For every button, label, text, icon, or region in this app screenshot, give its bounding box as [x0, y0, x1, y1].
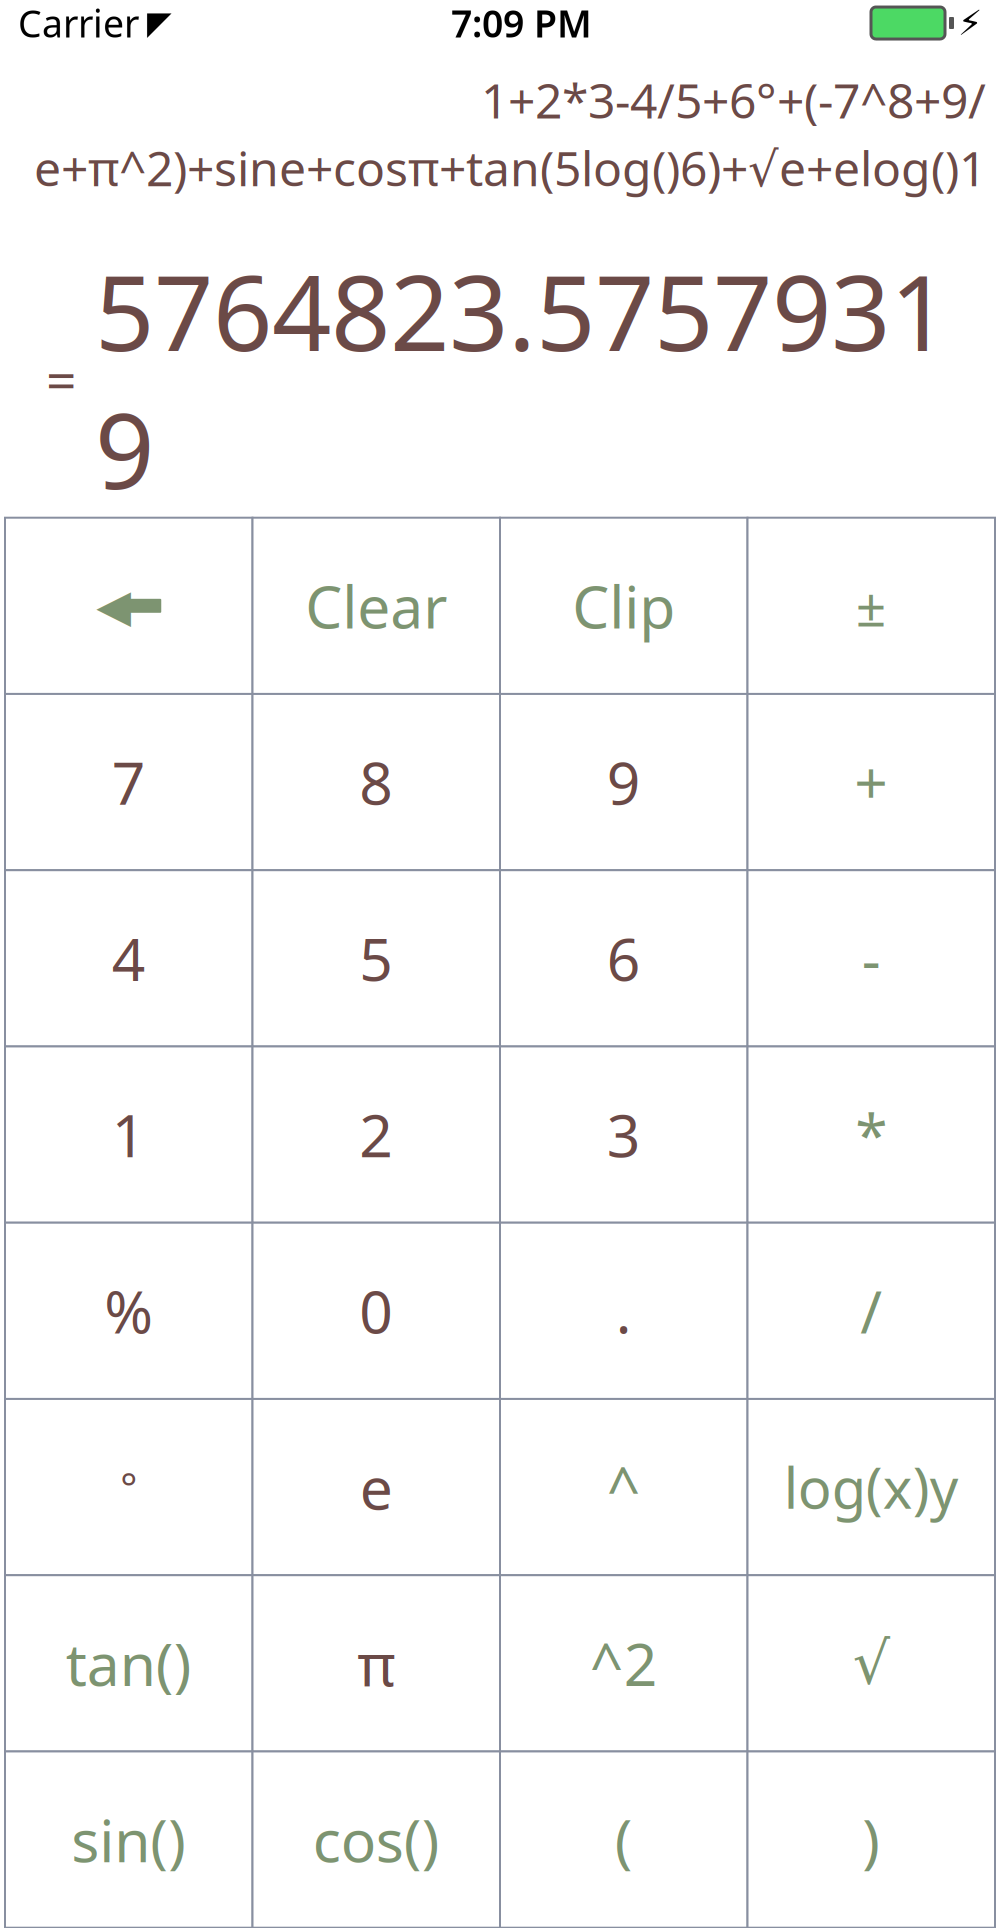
staticText: *: [855, 1096, 887, 1173]
button[interactable]: ±: [747, 518, 995, 694]
button[interactable]: /: [747, 1223, 995, 1399]
staticText: (: [615, 1801, 633, 1878]
staticText: 3: [607, 1096, 641, 1173]
staticText: =: [46, 344, 77, 415]
button[interactable]: *: [747, 1046, 995, 1223]
button[interactable]: 4: [5, 870, 252, 1046]
staticText: e: [360, 1448, 393, 1526]
staticText: °: [120, 1460, 137, 1514]
button[interactable]: 9: [500, 694, 747, 870]
staticText: 2: [359, 1096, 393, 1173]
button[interactable]: °: [5, 1399, 252, 1575]
button[interactable]: π: [252, 1575, 500, 1751]
button[interactable]: tan(): [5, 1575, 252, 1751]
button[interactable]: 1: [5, 1046, 252, 1223]
staticText: 9: [607, 743, 641, 821]
button[interactable]: 6: [500, 870, 747, 1046]
button[interactable]: cos(): [252, 1751, 500, 1928]
button[interactable]: .: [500, 1223, 747, 1399]
staticText: .: [616, 1272, 632, 1350]
button[interactable]: ^2: [500, 1575, 747, 1751]
button[interactable]: 3: [500, 1046, 747, 1223]
staticText: π: [357, 1624, 395, 1702]
staticText: ◀: [96, 580, 131, 632]
button[interactable]: 2: [252, 1046, 500, 1223]
staticText: /: [860, 1272, 882, 1350]
button[interactable]: -: [747, 870, 995, 1046]
staticText: %: [104, 1272, 153, 1350]
button[interactable]: ^: [500, 1399, 747, 1575]
button[interactable]: 0: [252, 1223, 500, 1399]
button[interactable]: ): [747, 1751, 995, 1928]
button[interactable]: Clear: [252, 518, 500, 694]
button[interactable]: Backspace: [5, 518, 252, 694]
staticText: log(x)y: [784, 1450, 959, 1524]
staticText: ±: [856, 570, 887, 641]
staticText: 7: [112, 743, 146, 821]
button[interactable]: √: [747, 1575, 995, 1751]
staticText: +: [854, 743, 888, 821]
button[interactable]: %: [5, 1223, 252, 1399]
button[interactable]: 7: [5, 694, 252, 870]
staticText: 1: [112, 1096, 146, 1173]
staticText: 4: [112, 919, 146, 997]
button[interactable]: sin(): [5, 1751, 252, 1928]
staticText: cos(): [313, 1801, 440, 1878]
staticText: Clear: [305, 567, 447, 645]
staticText: tan(): [66, 1624, 192, 1702]
staticText: sin(): [71, 1801, 186, 1878]
button[interactable]: Clip: [500, 518, 747, 694]
staticText: e+π^2)+sine+cosπ+tan(5log()6)+√e+elog()1: [34, 136, 986, 199]
button[interactable]: 5: [252, 870, 500, 1046]
button[interactable]: e: [252, 1399, 500, 1575]
staticText: -: [862, 919, 881, 997]
staticText: 5: [359, 919, 393, 997]
staticText: Clip: [572, 567, 675, 645]
staticText: ^2: [590, 1624, 658, 1702]
staticText: ^: [607, 1448, 641, 1526]
staticText: 0: [359, 1272, 393, 1350]
button[interactable]: (: [500, 1751, 747, 1928]
button[interactable]: log(x)y: [747, 1399, 995, 1575]
staticText: 8: [359, 743, 393, 821]
staticText: √: [853, 1630, 890, 1697]
staticText: 5764823.57579319: [95, 241, 949, 518]
staticText: 1+2*3-4/5+6°+(-7^8+9/: [481, 68, 986, 132]
staticText: ): [862, 1801, 880, 1878]
staticText: 6: [607, 919, 641, 997]
button[interactable]: 8: [252, 694, 500, 870]
button[interactable]: +: [747, 694, 995, 870]
